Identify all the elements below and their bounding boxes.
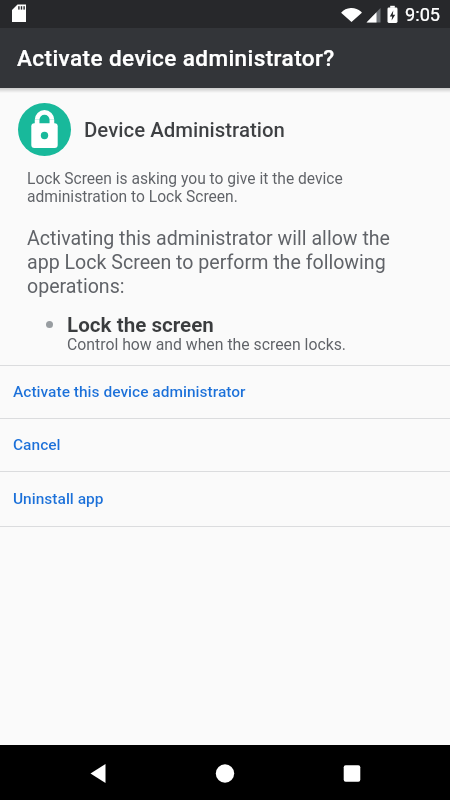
button[interactable]: Activate this device administrator: [0, 366, 450, 418]
button[interactable]: Cancel: [0, 419, 450, 471]
button[interactable]: [337, 756, 367, 790]
staticText: Device Administration: [84, 118, 285, 142]
staticText: Activate this device administrator: [13, 383, 246, 401]
staticText: Lock Screen is asking you to give it the…: [27, 170, 343, 206]
staticText: Cancel: [13, 436, 61, 454]
staticText: Lock the screen: [67, 313, 214, 337]
staticText: 9:05: [405, 4, 441, 25]
staticText: Control how and when the screen locks.: [67, 335, 347, 354]
staticText: Activate device administrator?: [17, 45, 335, 71]
button[interactable]: Uninstall app: [0, 472, 450, 526]
staticText: Activating this administrator will allow…: [27, 227, 391, 298]
button[interactable]: [210, 756, 240, 790]
staticText: Uninstall app: [13, 490, 104, 508]
button[interactable]: [83, 756, 113, 790]
